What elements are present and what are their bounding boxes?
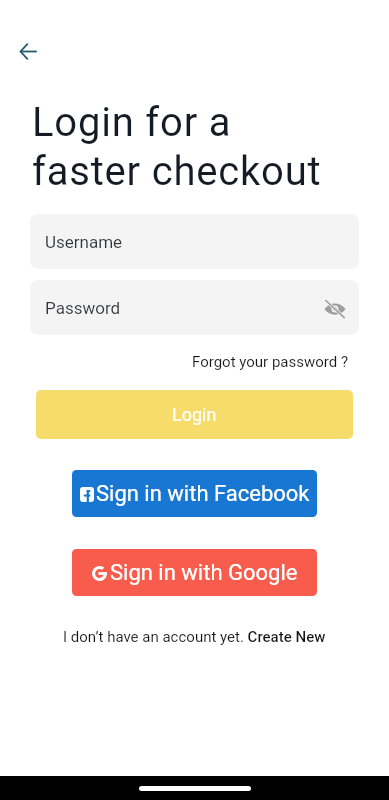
staticText: Sign in with Google — [110, 560, 298, 586]
button[interactable]: Password — [30, 280, 359, 335]
staticText: Username — [45, 232, 123, 252]
button[interactable]: Sign in with Google — [72, 549, 317, 596]
staticText: Sign in with Facebook — [96, 481, 310, 507]
staticText: Login — [172, 404, 217, 425]
button[interactable]: Show password — [321, 294, 349, 322]
button[interactable]: Forgot your password ? — [192, 353, 348, 371]
button[interactable]: Username — [30, 214, 359, 269]
staticText: Password — [45, 298, 121, 318]
button[interactable]: I don’t have an account yet. Create New — [63, 628, 326, 646]
button[interactable]: Back — [12, 35, 44, 67]
button[interactable]: Login — [36, 390, 353, 439]
staticText: Login for a faster checkout — [32, 99, 322, 195]
button[interactable]: Sign in with Facebook — [72, 470, 317, 517]
